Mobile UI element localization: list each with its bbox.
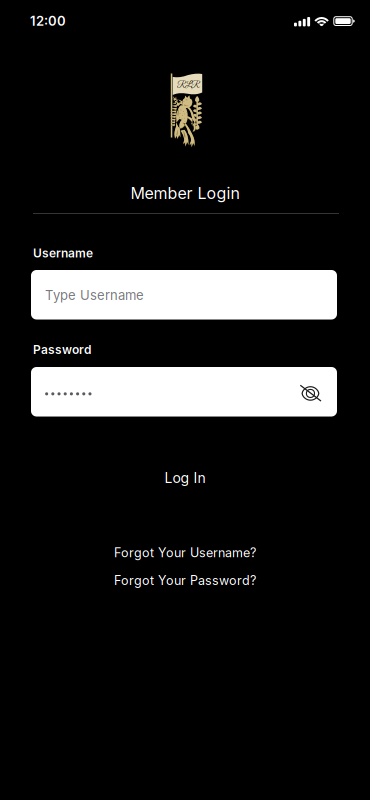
staticText: Username bbox=[33, 246, 93, 260]
staticText: 12:00 bbox=[30, 13, 66, 29]
staticText: RLR bbox=[177, 80, 199, 90]
button[interactable]: Forgot Your Username? bbox=[75, 542, 295, 564]
staticText: Forgot Your Username? bbox=[114, 545, 256, 560]
staticText: Forgot Your Password? bbox=[114, 573, 256, 588]
staticText: Type Username bbox=[45, 287, 144, 303]
staticText: Member Login bbox=[130, 183, 239, 203]
staticText: Log In bbox=[164, 469, 205, 486]
button[interactable]: Log In bbox=[125, 463, 245, 493]
button[interactable]: Show password bbox=[292, 375, 328, 411]
button[interactable]: Forgot Your Password? bbox=[75, 569, 295, 591]
staticText: Password bbox=[33, 342, 91, 357]
